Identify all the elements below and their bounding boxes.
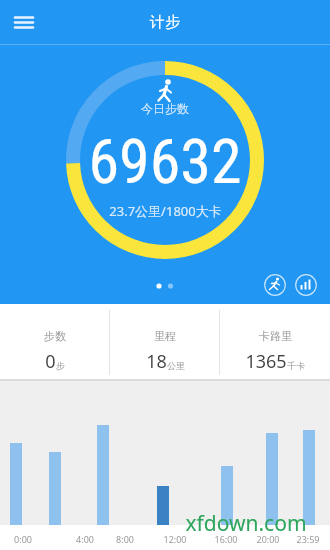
staticText: xfdown.com (185, 509, 307, 535)
staticText: 里程 (154, 329, 176, 343)
staticText: 4:00 (76, 533, 94, 545)
staticText: 8:00 (116, 533, 134, 545)
staticText: 16:00 (214, 533, 238, 545)
staticText: 0 (45, 349, 56, 374)
staticText: 步数 (44, 329, 66, 343)
staticText: 20:00 (256, 533, 280, 545)
staticText: 今日步数 (141, 101, 189, 116)
staticText: 12:00 (163, 533, 187, 545)
staticText: 千卡 (287, 360, 305, 371)
staticText: 卡路里 (259, 329, 292, 343)
staticText: 23:59 (296, 533, 320, 545)
button[interactable] (260, 270, 290, 300)
button[interactable] (0, 0, 48, 45)
staticText: 69632 (88, 125, 242, 191)
button[interactable]: 步数 (0, 329, 110, 379)
staticText: 公里 (167, 360, 185, 371)
staticText: 计步 (150, 13, 180, 32)
button[interactable] (291, 270, 321, 300)
button[interactable]: 里程 (110, 329, 220, 379)
staticText: 0:00 (14, 533, 32, 545)
button[interactable]: 卡路里 (220, 329, 330, 379)
staticText: 1365 (245, 349, 287, 374)
staticText: 步 (56, 360, 65, 371)
staticText: 23.7公里/1800大卡 (109, 202, 222, 220)
staticText: 18 (146, 349, 167, 374)
